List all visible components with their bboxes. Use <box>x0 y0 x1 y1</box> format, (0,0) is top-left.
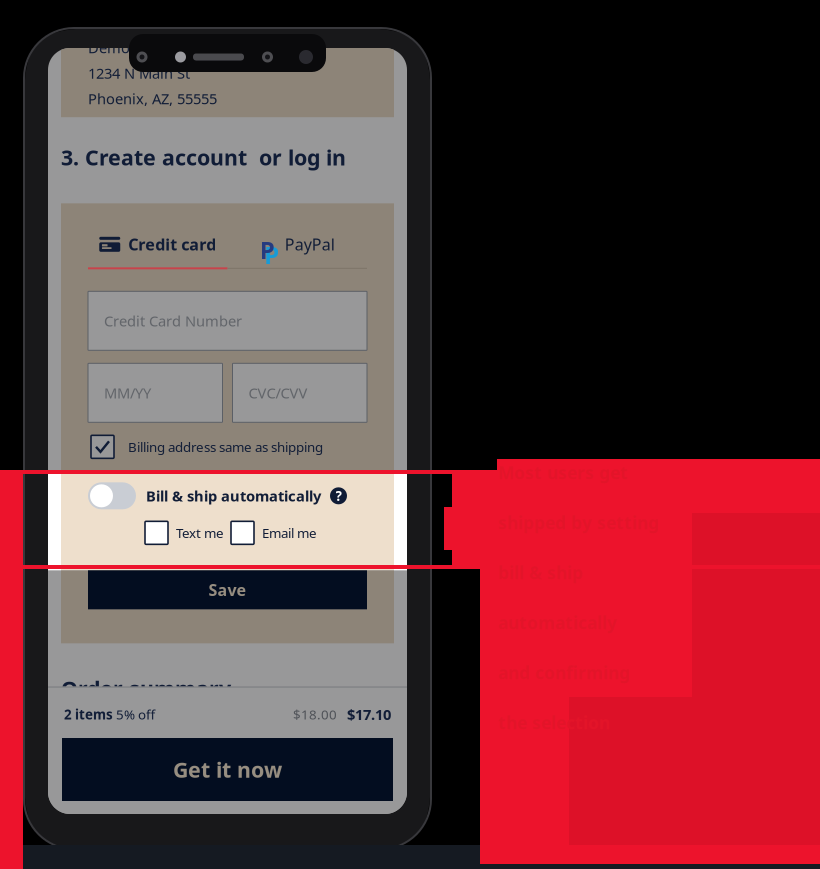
button[interactable]: Text me <box>145 521 224 544</box>
staticText: Demo Name <box>88 38 175 57</box>
staticText: 5% off <box>113 705 155 723</box>
staticText: Most users get <box>498 461 628 484</box>
staticText: $18.00 <box>293 705 337 723</box>
button[interactable]: Get it now <box>62 738 393 801</box>
staticText: PayPal <box>285 234 335 255</box>
staticText: the selection <box>498 711 610 734</box>
staticText: Credit card <box>128 234 216 255</box>
staticText: 1234 N Main St <box>88 63 190 83</box>
button[interactable]: P <box>227 228 367 260</box>
button[interactable]: Help <box>321 487 347 504</box>
staticText: 3. Create account or log in <box>61 143 346 171</box>
staticText: 2 items <box>64 705 113 723</box>
staticText: ? <box>335 487 341 505</box>
staticText: Get it now <box>173 755 282 784</box>
staticText: CVC/CVV <box>248 383 307 403</box>
staticText: MM/YY <box>104 383 151 403</box>
button[interactable]: Email me <box>224 521 317 544</box>
button[interactable]: Bill and ship automatically <box>88 482 136 509</box>
staticText: Billing address same as shipping <box>128 438 323 456</box>
button[interactable]: Save <box>88 570 367 609</box>
staticText: Bill & ship automatically <box>146 486 321 506</box>
staticText: P <box>260 234 275 266</box>
staticText: $17.10 <box>347 704 391 724</box>
staticText: Save <box>208 579 246 600</box>
staticText: shipped by setting <box>498 511 659 534</box>
staticText: and confirming <box>498 661 630 684</box>
staticText: Credit Card Number <box>104 311 242 331</box>
staticText: Phoenix, AZ, 55555 <box>88 89 217 108</box>
staticText: automatically <box>498 611 617 634</box>
staticText: Text me <box>176 524 224 542</box>
staticText: Order summary <box>61 674 231 703</box>
staticText: Email me <box>262 524 317 542</box>
staticText: P <box>264 239 279 271</box>
staticText: bill & ship <box>498 561 583 584</box>
button[interactable]: Billing address same as shipping <box>61 422 394 470</box>
button[interactable]: Credit card <box>88 228 227 260</box>
